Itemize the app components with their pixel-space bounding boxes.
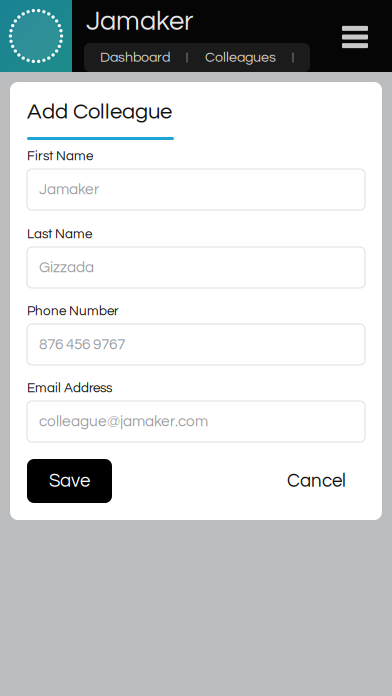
staticText: Email Address xyxy=(27,381,112,395)
staticText: Last Name xyxy=(27,227,92,241)
staticText: Gizzada xyxy=(39,260,94,275)
button[interactable]: Cancel xyxy=(273,459,360,503)
staticText: 876 456 9767 xyxy=(39,337,125,352)
staticText: Jamaker xyxy=(86,7,193,36)
staticText: Dashboard xyxy=(100,50,170,65)
staticText: Colleagues xyxy=(205,50,276,65)
button[interactable]: Save xyxy=(27,459,112,503)
staticText: Jamaker xyxy=(39,182,99,197)
staticText: Cancel xyxy=(287,471,346,491)
button[interactable]: Colleagues xyxy=(188,43,292,72)
staticText: Save xyxy=(49,471,90,491)
staticText: Phone Number xyxy=(27,304,119,318)
button[interactable]: Dashboard xyxy=(84,43,186,72)
staticText: colleague@jamaker.com xyxy=(39,414,208,429)
staticText: First Name xyxy=(27,149,93,163)
staticText: Add Colleague xyxy=(27,100,172,123)
button[interactable]: Menu xyxy=(333,15,377,57)
